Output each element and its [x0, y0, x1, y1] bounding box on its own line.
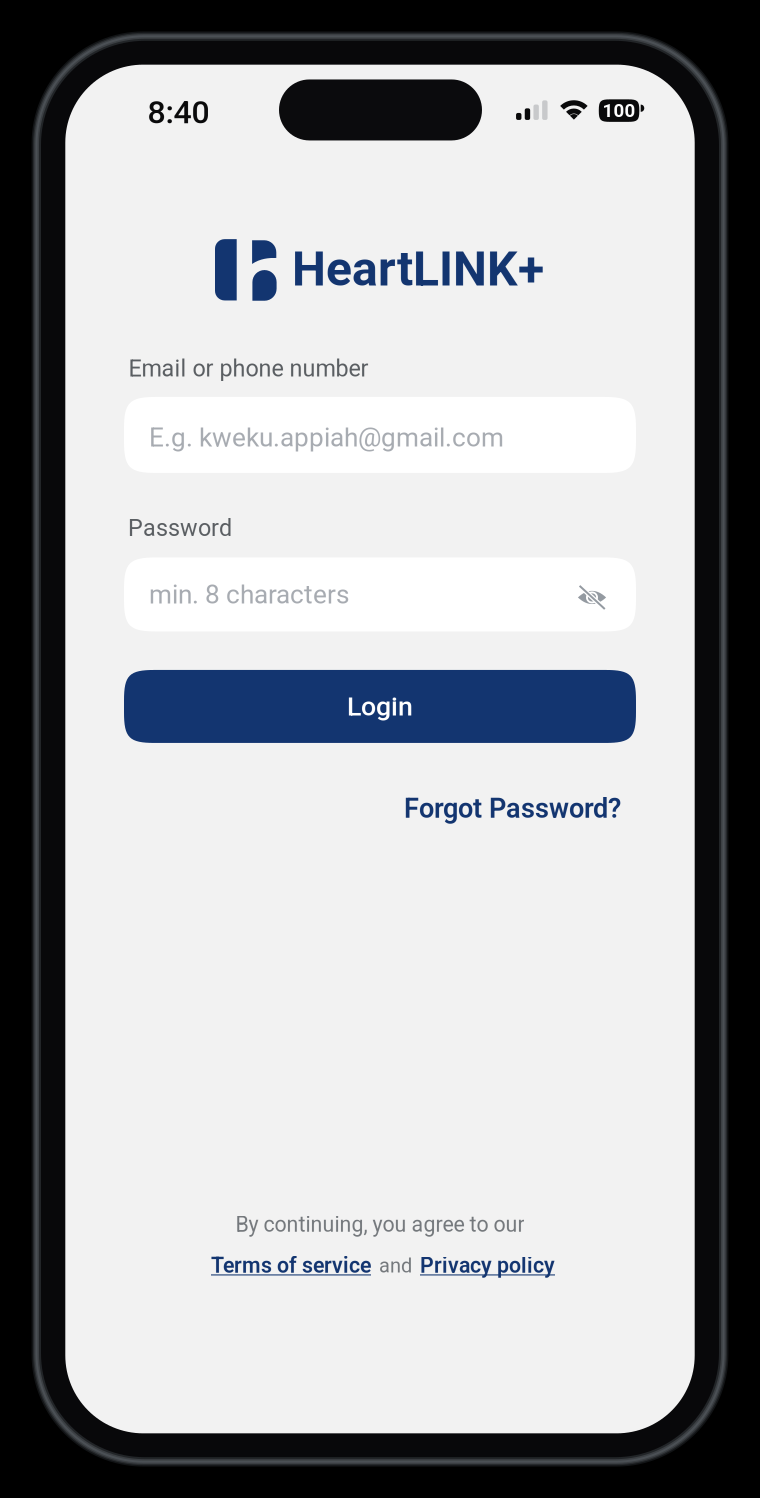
staticText: Privacy policy — [420, 1253, 555, 1278]
staticText: and — [379, 1254, 412, 1277]
button[interactable]: Privacy policy — [420, 1253, 555, 1278]
staticText: By continuing, you agree to our — [235, 1212, 524, 1237]
button[interactable]: Terms of service — [211, 1253, 371, 1278]
button[interactable]: E.g. kweku.appiah@gmail.com — [124, 397, 636, 473]
staticText: Password — [128, 514, 232, 542]
button[interactable]: Forgot Password? — [404, 792, 621, 824]
staticText: E.g. kweku.appiah@gmail.com — [149, 422, 504, 453]
staticText: 8:40 — [147, 93, 209, 131]
button[interactable]: Login — [124, 670, 636, 743]
staticText: HeartLINK+ — [292, 241, 544, 297]
staticText: Forgot Password? — [404, 792, 621, 824]
staticText: Login — [347, 691, 413, 722]
staticText: min. 8 characters — [149, 579, 349, 610]
staticText: Email or phone number — [129, 355, 369, 382]
staticText: Terms of service — [211, 1253, 371, 1278]
button[interactable]: min. 8 characters — [124, 557, 636, 631]
staticText: 100 — [602, 100, 635, 122]
